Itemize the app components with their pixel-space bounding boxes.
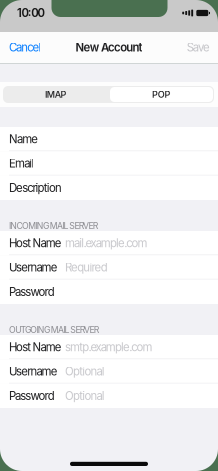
staticText: Email: [9, 157, 34, 170]
button[interactable]: Name: [0, 127, 218, 151]
staticText: mail.example.com: [65, 236, 147, 250]
staticText: Optional: [65, 389, 105, 403]
button[interactable]: Save: [179, 32, 218, 63]
button[interactable]: Email: [0, 151, 218, 176]
staticText: INCOMING MAIL SERVER: [9, 220, 99, 231]
staticText: Username: [9, 261, 58, 274]
staticText: Name: [9, 132, 38, 146]
staticText: OUTGOING MAIL SERVER: [9, 324, 100, 335]
button[interactable]: Host Name: [0, 335, 218, 359]
button[interactable]: Host Name: [0, 231, 218, 255]
staticText: Save: [187, 41, 210, 54]
button[interactable]: POP: [108, 86, 214, 103]
staticText: Host Name: [9, 236, 62, 250]
staticText: Password: [9, 285, 55, 299]
staticText: Cancel: [9, 41, 41, 54]
staticText: Host Name: [9, 340, 62, 354]
staticText: IMAP: [45, 89, 66, 100]
button[interactable]: Username: [0, 359, 218, 384]
staticText: Password: [9, 389, 55, 403]
button[interactable]: Cancel: [0, 32, 49, 63]
staticText: smtp.example.com: [65, 340, 152, 354]
staticText: POP: [152, 89, 171, 100]
staticText: Optional: [65, 365, 105, 378]
button[interactable]: Username: [0, 255, 218, 280]
button[interactable]: Password: [0, 384, 218, 408]
staticText: 10:00: [17, 6, 45, 20]
button[interactable]: IMAP: [3, 86, 108, 103]
button[interactable]: Password: [0, 280, 218, 304]
staticText: New Account: [75, 41, 142, 54]
button[interactable]: Description: [0, 176, 218, 200]
staticText: Username: [9, 365, 58, 378]
staticText: Required: [65, 261, 108, 274]
staticText: Description: [9, 181, 62, 195]
